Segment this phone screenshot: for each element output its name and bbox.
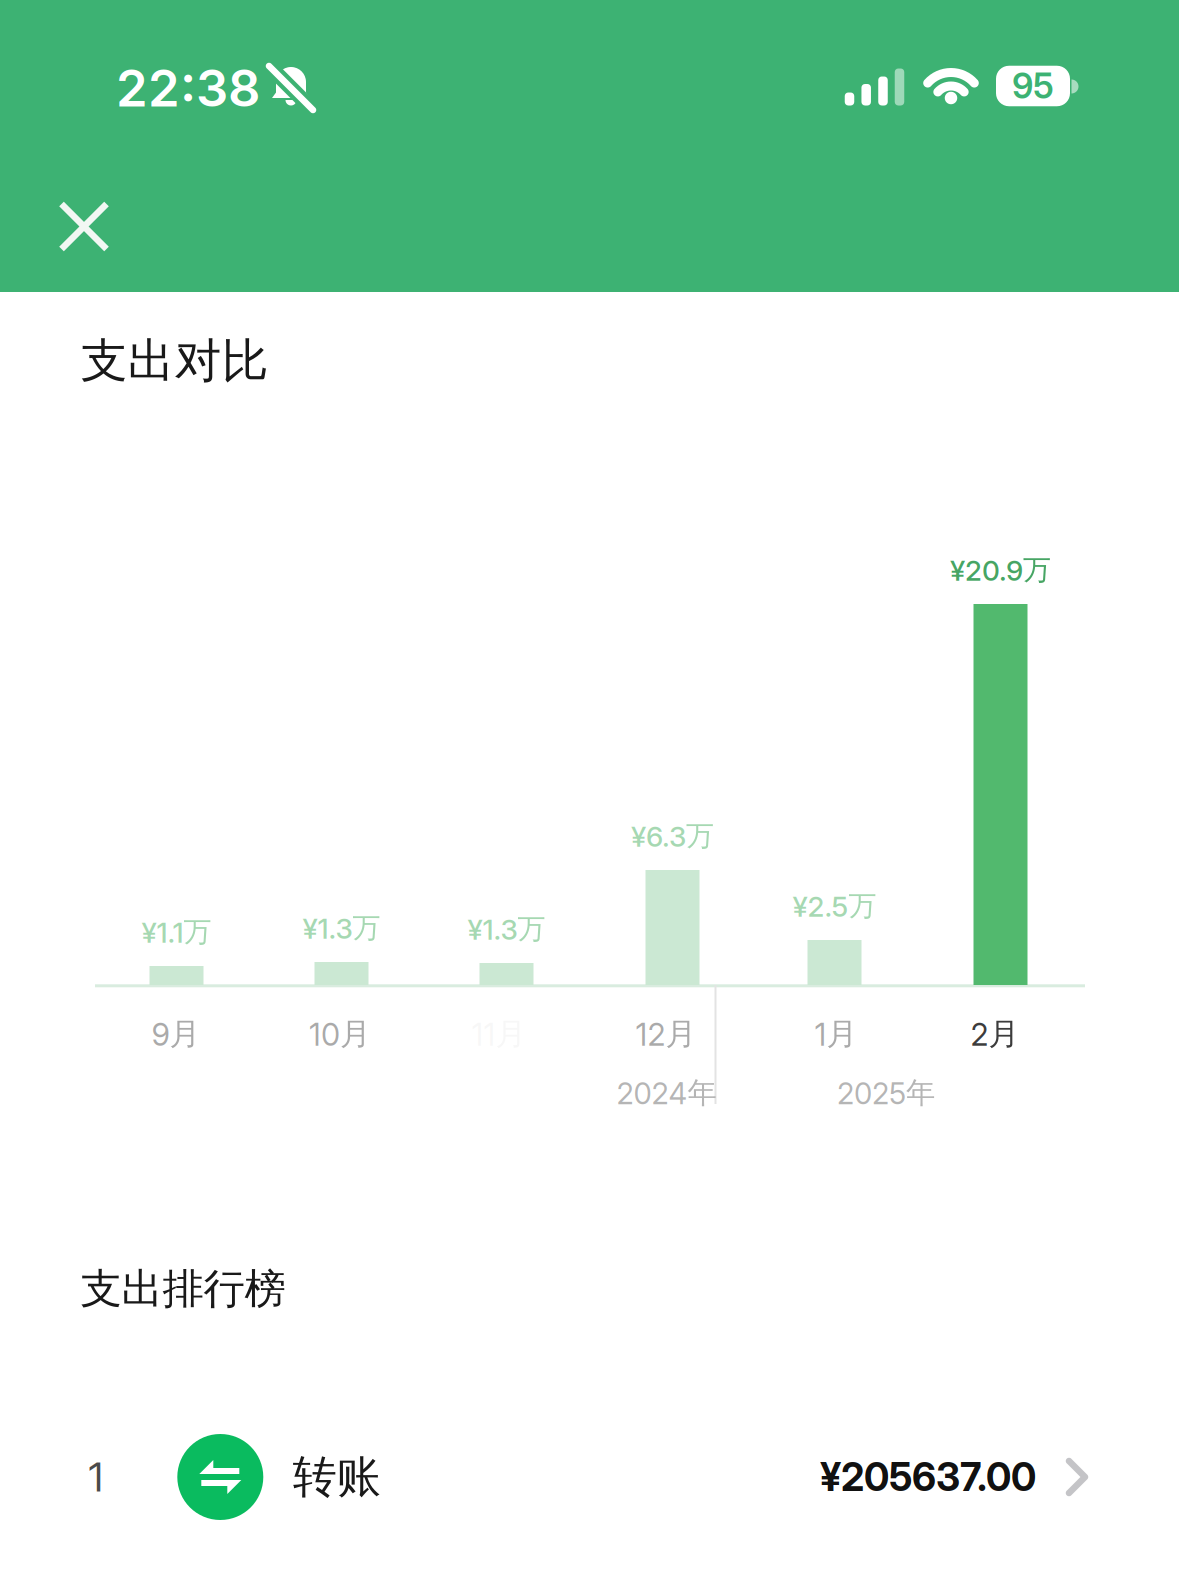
staticText: ¥6.3万 xyxy=(631,818,714,854)
staticText: 1 xyxy=(88,1453,103,1501)
staticText: 转账 xyxy=(293,1449,381,1505)
button[interactable]: Close xyxy=(39,181,129,271)
staticText: ¥1.3万 xyxy=(302,910,380,946)
staticText: 2024年 xyxy=(617,1074,717,1111)
staticText: 支出对比 xyxy=(81,332,269,390)
staticText: 支出排行榜 xyxy=(80,1263,285,1315)
staticText: 1月 xyxy=(814,1015,857,1053)
staticText: ¥205637.00 xyxy=(820,1454,1036,1500)
staticText: 95 xyxy=(1012,65,1054,107)
button[interactable]: 1 xyxy=(0,1415,1179,1539)
staticText: ¥2.5万 xyxy=(792,888,876,924)
staticText: ¥1.3万 xyxy=(467,911,545,947)
staticText: ¥1.1万 xyxy=(141,914,211,950)
staticText: 12月 xyxy=(635,1015,696,1053)
staticText: 10月 xyxy=(309,1015,371,1053)
staticText: 2月 xyxy=(970,1015,1019,1053)
staticText: 22:38 xyxy=(116,57,260,119)
staticText: 2025年 xyxy=(837,1074,935,1111)
staticText: ¥20.9万 xyxy=(950,552,1051,588)
staticText: 9月 xyxy=(151,1015,200,1053)
